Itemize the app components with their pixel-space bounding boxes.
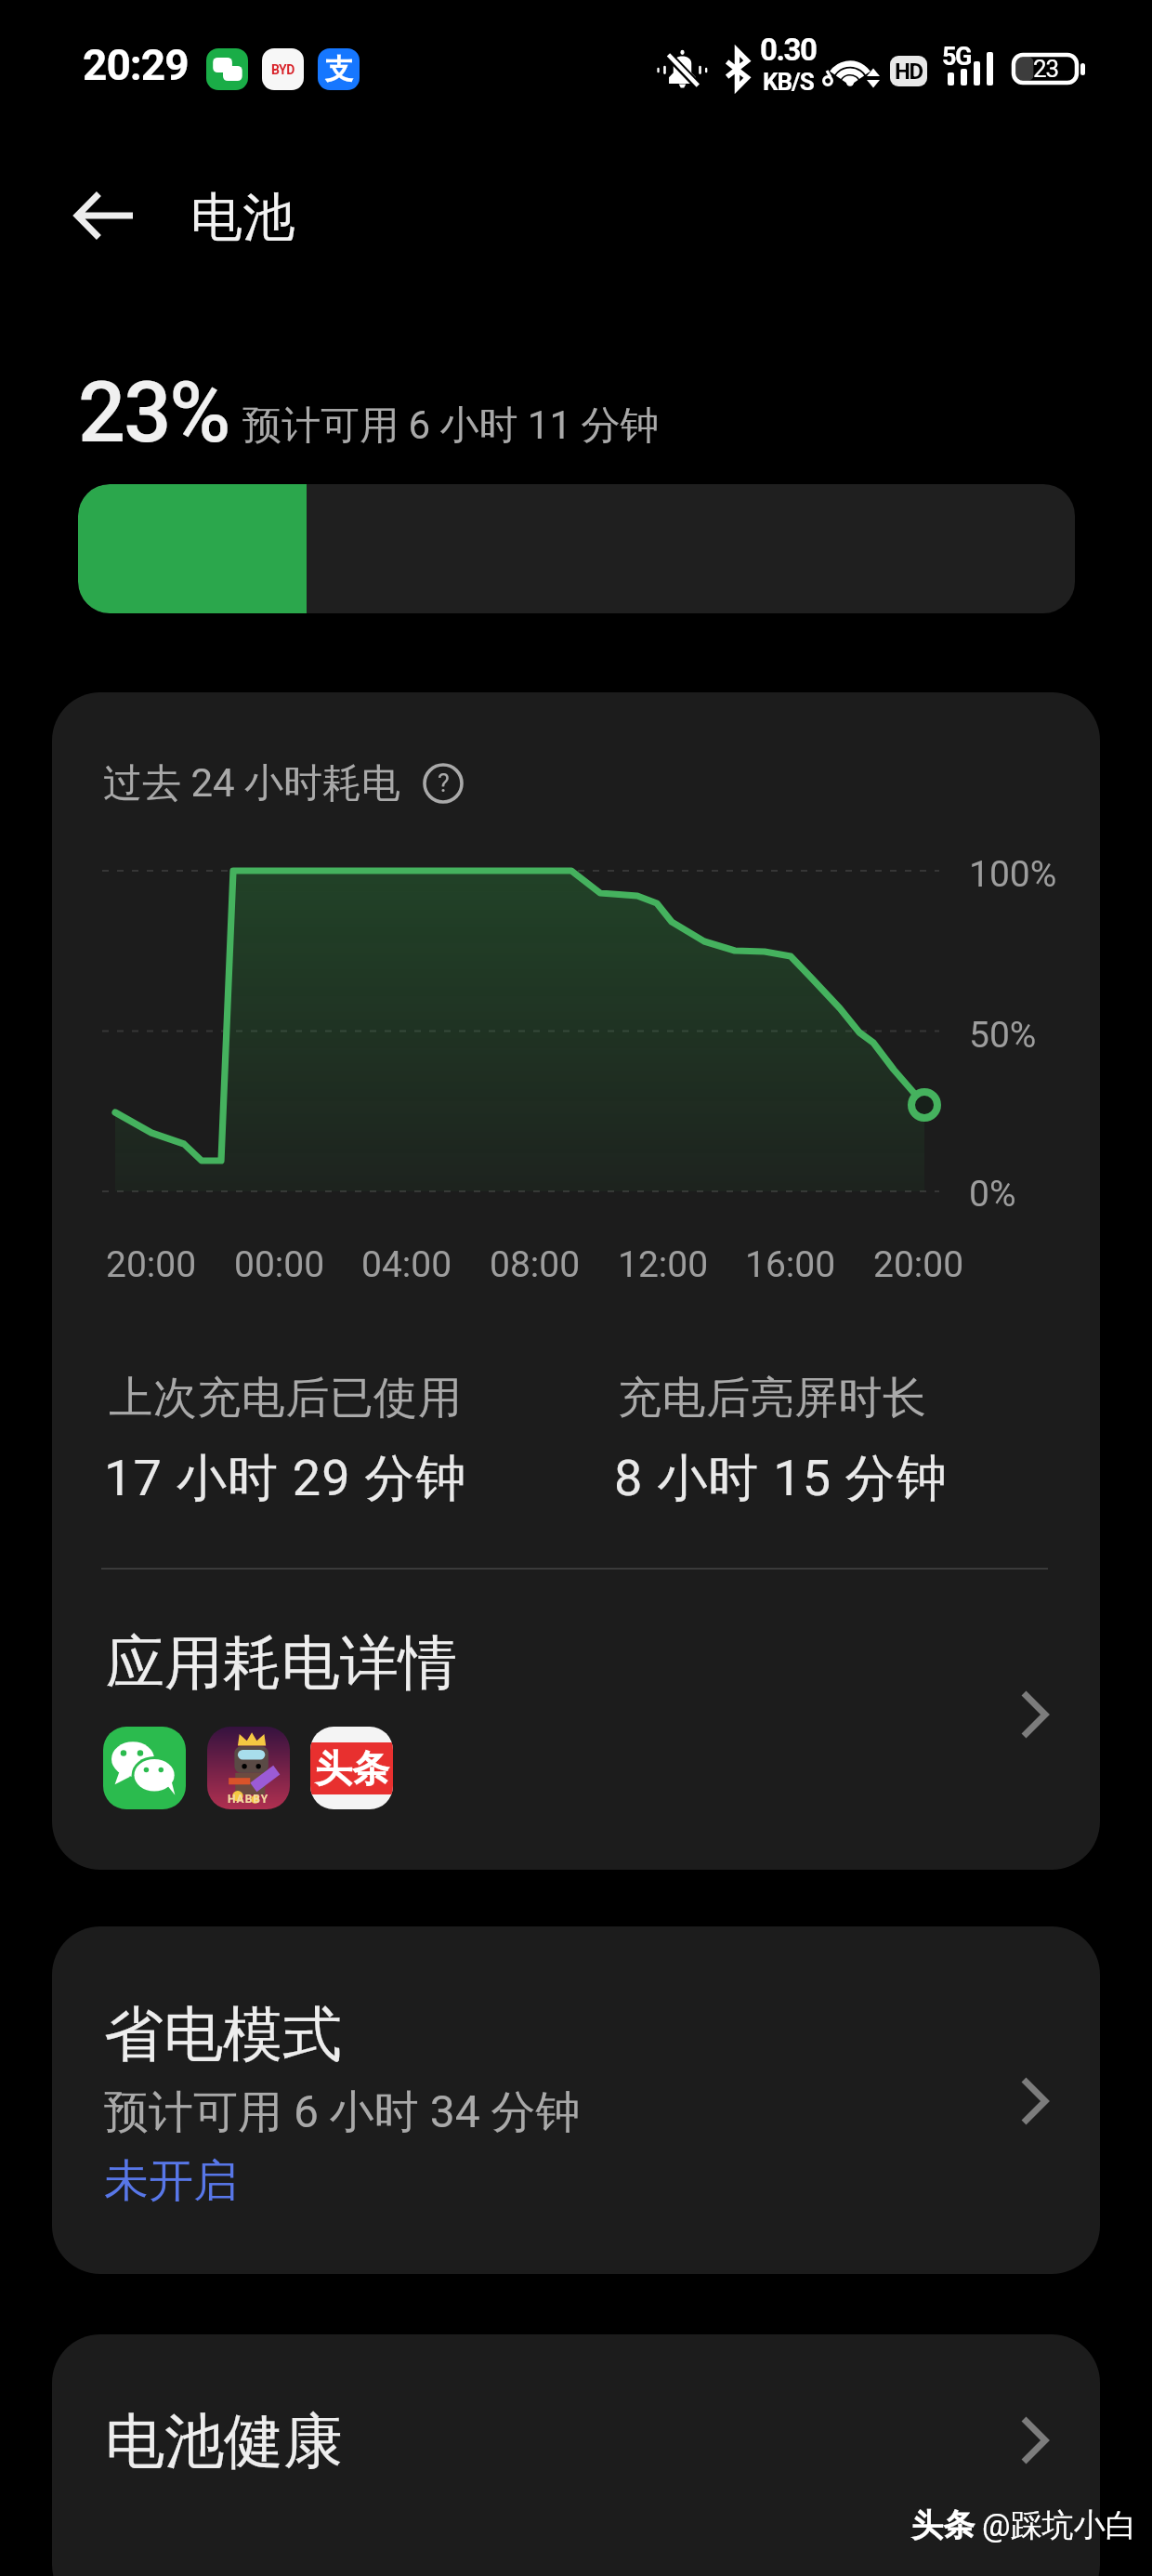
staticText: HD	[895, 59, 923, 85]
staticText: @踩坑小白	[982, 2505, 1137, 2545]
staticText: 20:00	[873, 1243, 964, 1286]
staticText: 电池健康	[105, 2404, 343, 2479]
staticText: 应用耗电详情	[106, 1626, 457, 1700]
staticText: 00:00	[234, 1243, 325, 1286]
staticText: HABBY	[228, 1793, 269, 1806]
staticText: 未开启	[104, 2153, 238, 2209]
staticText: 0%	[969, 1173, 1016, 1216]
staticText: 08:00	[490, 1243, 581, 1286]
staticText: 过去 24 小时耗电	[103, 759, 401, 808]
staticText: 04:00	[361, 1243, 452, 1286]
staticText: 充电后亮屏时长	[618, 1371, 927, 1426]
staticText: 5G	[942, 42, 971, 72]
staticText: 50%	[969, 1014, 1037, 1057]
staticText: 预计可用 6 小时 34 分钟	[104, 2084, 581, 2140]
staticText: 支	[325, 52, 353, 87]
staticText: 0.30	[760, 32, 817, 68]
staticText: 23	[1033, 55, 1059, 83]
staticText: 16:00	[745, 1243, 836, 1286]
button[interactable]: Help	[421, 761, 465, 806]
staticText: 17 小时 29 分钟	[104, 1447, 467, 1510]
staticText: 8 小时 15 分钟	[614, 1447, 949, 1510]
staticText: 电池	[190, 185, 295, 251]
staticText: 20:29	[83, 40, 189, 90]
button[interactable]: 电池健康	[52, 2334, 1100, 2576]
staticText: 12:00	[618, 1243, 709, 1286]
staticText: 头条	[315, 1745, 389, 1792]
staticText: 20:00	[106, 1243, 197, 1286]
staticText: KB/S	[763, 68, 814, 96]
button[interactable]: 应用耗电详情	[52, 1603, 1100, 1870]
staticText: 上次充电后已使用	[109, 1371, 462, 1426]
staticText: ?	[438, 769, 450, 798]
staticText: BYD	[271, 62, 295, 77]
staticText: 省电模式	[104, 1997, 342, 2072]
staticText: 23%	[78, 364, 229, 462]
staticText: 头条	[911, 2505, 975, 2545]
staticText: 100%	[969, 853, 1057, 896]
button[interactable]: 省电模式	[52, 1926, 1100, 2274]
staticText: 预计可用 6 小时 11 分钟	[242, 401, 660, 451]
button[interactable]: Back	[61, 173, 147, 258]
